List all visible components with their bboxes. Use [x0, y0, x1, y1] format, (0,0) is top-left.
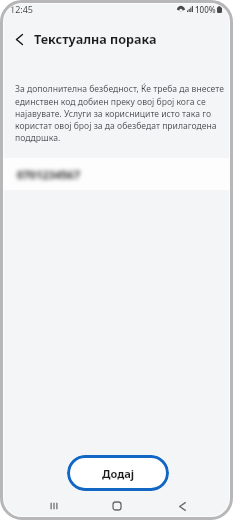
button[interactable]: Back — [148, 497, 211, 515]
staticText: Текстуална порака — [34, 31, 157, 48]
button[interactable]: Back — [0, 24, 34, 54]
staticText: 0701234567 — [17, 167, 80, 182]
staticText: За дополнителна безбедност, Ќе треба да … — [15, 83, 227, 143]
button[interactable]: Додај — [67, 455, 169, 491]
staticText: 12:45 — [10, 3, 34, 15]
button[interactable]: Recent apps — [22, 497, 85, 515]
staticText: Додај — [102, 466, 135, 481]
button[interactable]: 0701234567 — [0, 158, 233, 190]
staticText: 100% — [195, 4, 216, 15]
button[interactable]: Home — [85, 497, 148, 515]
